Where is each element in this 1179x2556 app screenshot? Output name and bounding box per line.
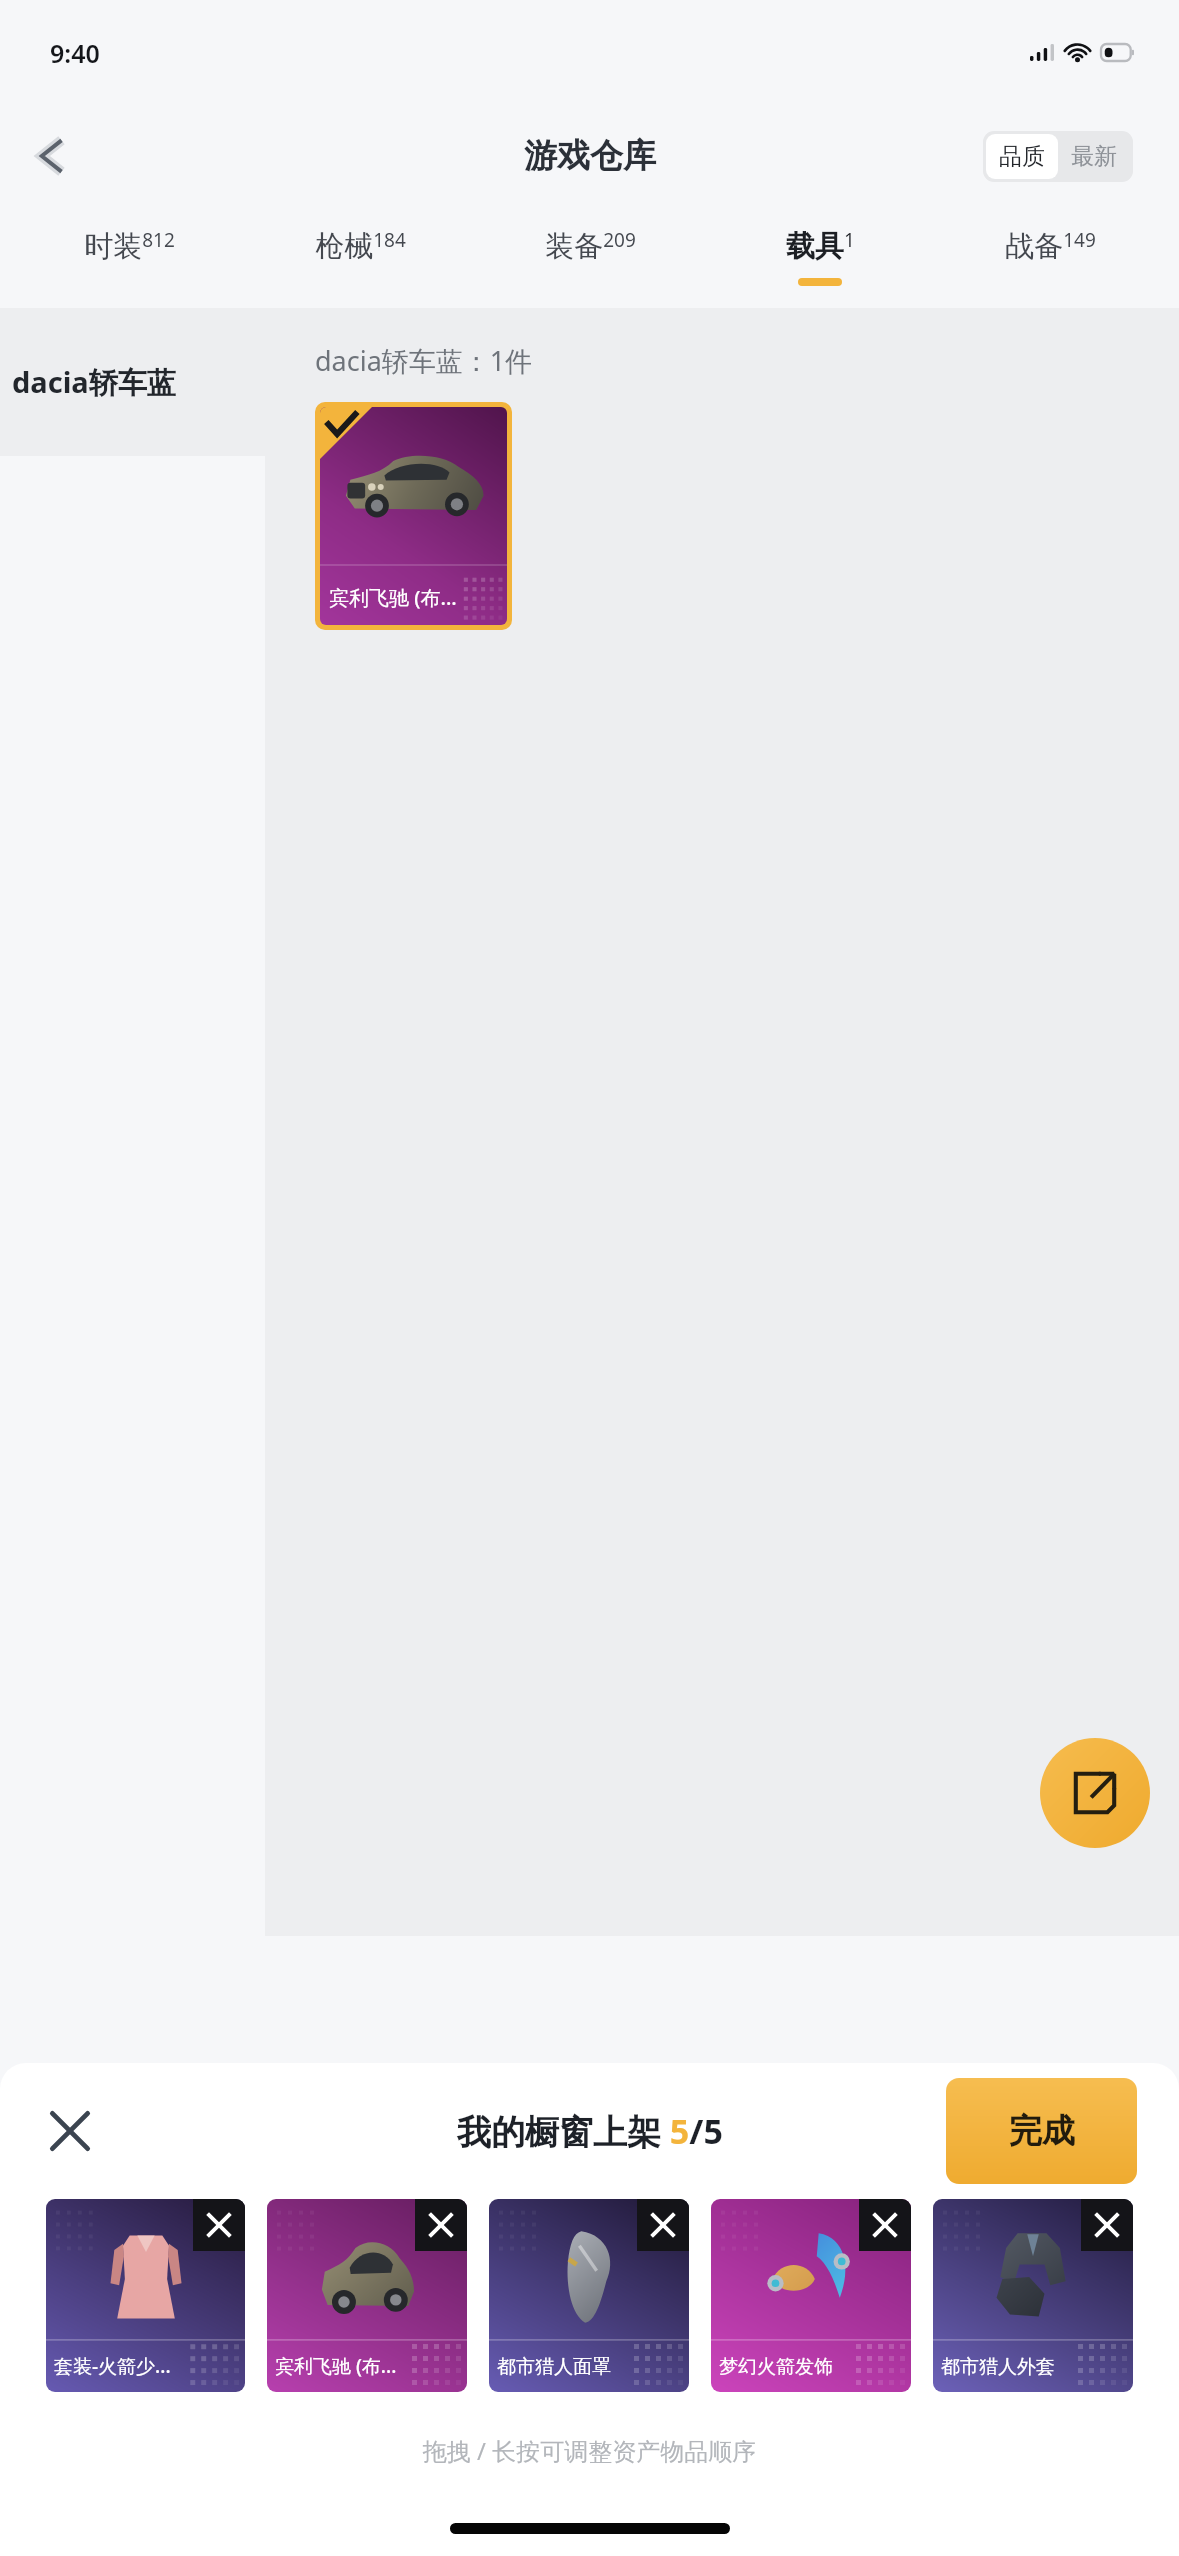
staticText: 9:40 (50, 36, 100, 70)
button[interactable]: dacia轿车蓝 (0, 308, 265, 456)
staticText: 最新 (1071, 142, 1117, 171)
staticText: 时装812 (84, 227, 175, 265)
button[interactable]: 品质 (986, 134, 1058, 179)
staticText: dacia轿车蓝：1件 (315, 342, 533, 379)
staticText: 拖拽 / 长按可调整资产物品顺序 (0, 2434, 1179, 2467)
staticText: 战备149 (1005, 227, 1096, 265)
staticText: 宾利飞驰 (布... (275, 2353, 397, 2379)
button[interactable]: Open in new window (1040, 1738, 1150, 1848)
button[interactable]: 宾利飞驰 (布... (315, 402, 512, 630)
staticText: 宾利飞驰 (布... (329, 584, 457, 611)
staticText: 都市猎人面罩 (497, 2355, 611, 2379)
button[interactable]: Remove 都市猎人面罩 (637, 2199, 689, 2251)
button[interactable]: Back (18, 120, 90, 192)
button[interactable]: 载具1 (705, 216, 935, 308)
staticText: 梦幻火箭发饰 (719, 2355, 833, 2379)
button[interactable]: Remove 套装-火箭少... (46, 2199, 245, 2392)
button[interactable]: Close (36, 2097, 104, 2165)
button[interactable]: Remove 梦幻火箭发饰 (711, 2199, 911, 2392)
button[interactable]: Remove 套装-火箭少... (193, 2199, 245, 2251)
button[interactable]: Remove 都市猎人外套 (933, 2199, 1133, 2392)
button[interactable]: 枪械184 (245, 216, 475, 308)
button[interactable]: 最新 (1058, 134, 1130, 179)
staticText: 装备209 (545, 227, 636, 265)
button[interactable]: 战备149 (935, 216, 1165, 308)
staticText: 套装-火箭少... (54, 2353, 171, 2379)
button[interactable]: Remove 都市猎人外套 (1081, 2199, 1133, 2251)
staticText: 载具1 (786, 227, 855, 265)
staticText: dacia轿车蓝 (12, 362, 176, 402)
staticText: 枪械184 (315, 227, 406, 265)
staticText: 都市猎人外套 (941, 2355, 1055, 2379)
staticText: 我的橱窗上架 5/5 (457, 2108, 723, 2154)
button[interactable]: Remove 梦幻火箭发饰 (859, 2199, 911, 2251)
staticText: 游戏仓库 (524, 135, 656, 177)
button[interactable]: Remove 都市猎人面罩 (489, 2199, 689, 2392)
staticText: 品质 (999, 142, 1045, 171)
button[interactable]: 完成 (946, 2078, 1137, 2184)
button[interactable]: Remove 宾利飞驰 (布... (267, 2199, 467, 2392)
button[interactable]: 装备209 (475, 216, 705, 308)
button[interactable]: Remove 宾利飞驰 (布... (415, 2199, 467, 2251)
button[interactable]: 时装812 (14, 216, 245, 308)
staticText: 完成 (1009, 2110, 1075, 2152)
